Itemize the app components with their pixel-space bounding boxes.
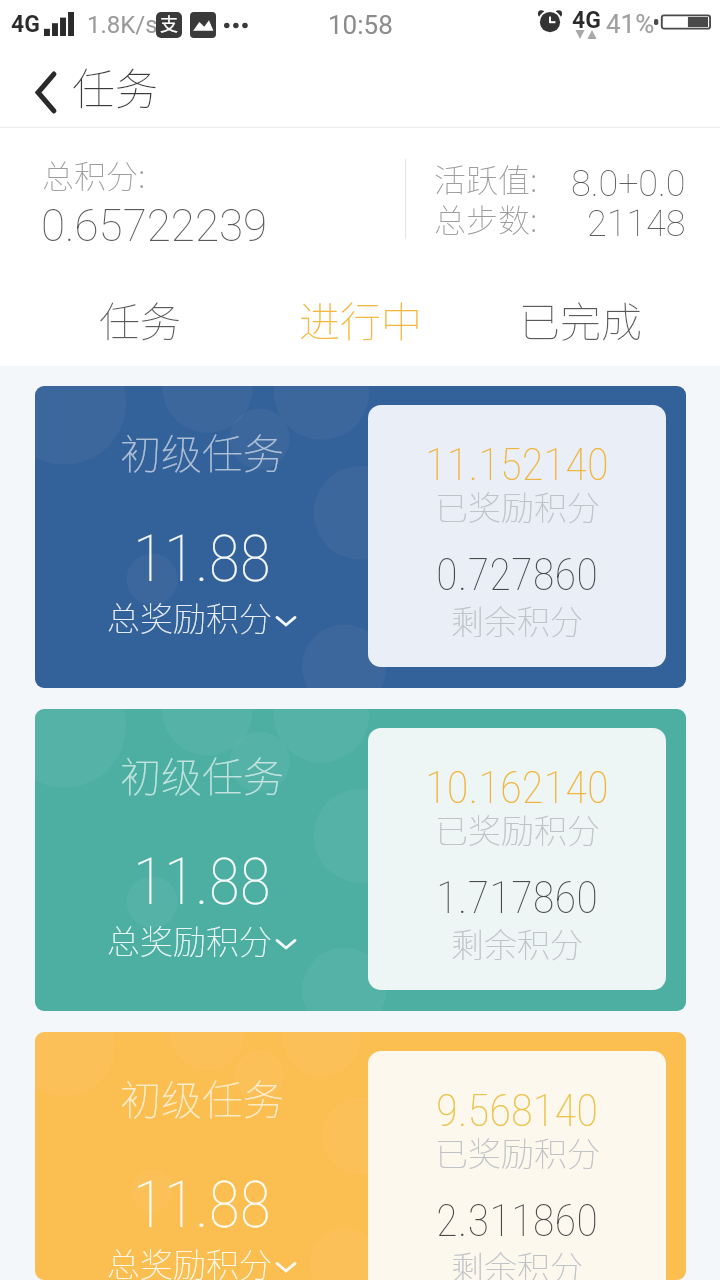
staticText: 11.88 bbox=[133, 1174, 271, 1241]
button[interactable]: 初级任务 bbox=[35, 709, 686, 1011]
staticText: 剩余积分 bbox=[451, 1252, 583, 1280]
button[interactable]: Back bbox=[21, 67, 71, 117]
staticText: 9.568140 bbox=[436, 1089, 599, 1136]
button[interactable]: 任务 bbox=[30, 285, 250, 363]
button[interactable]: 已完成 bbox=[470, 285, 690, 363]
button[interactable]: 总奖励积分 bbox=[107, 603, 297, 638]
staticText: 已奖励积分 bbox=[435, 815, 600, 850]
staticText: 4G bbox=[572, 9, 601, 33]
staticText: 8.0+0.0 bbox=[571, 166, 686, 204]
staticText: 41% bbox=[606, 11, 655, 38]
staticText: 总奖励积分 bbox=[107, 1249, 272, 1280]
staticText: 10:58 bbox=[328, 12, 393, 39]
staticText: 21148 bbox=[587, 206, 686, 244]
button[interactable]: 初级任务 bbox=[35, 1032, 686, 1280]
button[interactable]: 总奖励积分 bbox=[107, 926, 297, 961]
staticText: 2.311860 bbox=[436, 1199, 599, 1246]
staticText: 初级任务 bbox=[120, 758, 284, 801]
staticText: 11.88 bbox=[133, 528, 271, 595]
staticText: 支 bbox=[160, 16, 178, 35]
staticText: 11.88 bbox=[133, 851, 271, 918]
staticText: 进行中 bbox=[299, 303, 422, 346]
button[interactable]: 初级任务 bbox=[35, 386, 686, 688]
staticText: 活跃值: bbox=[434, 165, 538, 199]
staticText: 0.727860 bbox=[436, 553, 599, 600]
staticText: 10.162140 bbox=[425, 766, 609, 813]
staticText: 任务 bbox=[99, 303, 181, 346]
staticText: 0.65722239 bbox=[41, 204, 268, 250]
staticText: 剩余积分 bbox=[451, 606, 583, 641]
button[interactable]: 总奖励积分 bbox=[107, 1249, 297, 1280]
staticText: 已完成 bbox=[519, 303, 642, 346]
staticText: 11.152140 bbox=[425, 443, 609, 490]
staticText: 总积分: bbox=[42, 161, 146, 195]
button[interactable]: 进行中 bbox=[250, 285, 470, 363]
staticText: 总奖励积分 bbox=[107, 603, 272, 638]
staticText: 总奖励积分 bbox=[107, 926, 272, 961]
staticText: 总步数: bbox=[434, 205, 538, 239]
staticText: 已奖励积分 bbox=[435, 492, 600, 527]
staticText: 已奖励积分 bbox=[435, 1138, 600, 1173]
staticText: 初级任务 bbox=[120, 1081, 284, 1124]
staticText: 1.8K/s bbox=[87, 13, 158, 38]
staticText: 初级任务 bbox=[120, 435, 284, 478]
staticText: 剩余积分 bbox=[451, 929, 583, 964]
staticText: 1.717860 bbox=[436, 876, 599, 923]
staticText: 任务 bbox=[72, 69, 158, 114]
staticText: 4G bbox=[11, 13, 40, 37]
